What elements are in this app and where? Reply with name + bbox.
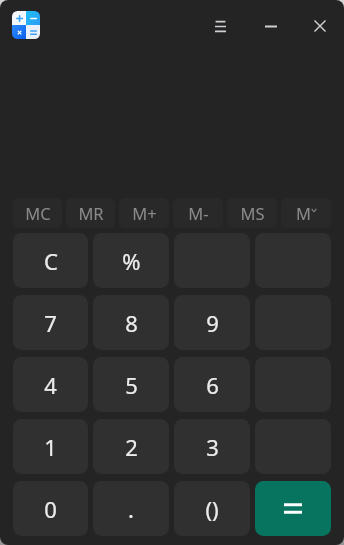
staticText: .: [128, 494, 134, 524]
staticText: MR: [78, 202, 104, 224]
button[interactable]: 8: [93, 295, 169, 350]
button[interactable]: More memory options: [281, 198, 331, 228]
button[interactable]: 0: [13, 481, 88, 536]
staticText: MC: [25, 202, 51, 224]
staticText: 8: [125, 308, 138, 338]
button[interactable]: Menu: [200, 2, 240, 50]
button[interactable]: 6: [174, 357, 250, 412]
staticText: M: [296, 202, 311, 224]
button[interactable]: MS: [227, 198, 277, 228]
button[interactable]: 1: [13, 419, 88, 474]
button[interactable]: 7: [13, 295, 88, 350]
staticText: (): [205, 494, 219, 524]
staticText: C: [44, 246, 58, 276]
staticText: 5: [125, 370, 138, 400]
button[interactable]: M+: [119, 198, 169, 228]
staticText: M-: [188, 202, 209, 224]
button[interactable]: Close: [300, 2, 340, 50]
button[interactable]: 4: [13, 357, 88, 412]
button[interactable]: .: [93, 481, 169, 536]
staticText: M+: [132, 202, 157, 224]
staticText: %: [122, 246, 141, 276]
button[interactable]: 2: [93, 419, 169, 474]
staticText: 2: [125, 432, 138, 462]
staticText: 4: [44, 370, 57, 400]
button[interactable]: %: [93, 233, 169, 288]
button[interactable]: M-: [173, 198, 223, 228]
button[interactable]: MR: [66, 198, 115, 228]
staticText: 7: [44, 308, 57, 338]
button[interactable]: C: [13, 233, 88, 288]
button[interactable]: MC: [13, 198, 62, 228]
staticText: 6: [206, 370, 219, 400]
staticText: MS: [240, 202, 265, 224]
button[interactable]: Equals: [255, 481, 331, 536]
staticText: 3: [206, 432, 219, 462]
button[interactable]: 5: [93, 357, 169, 412]
button[interactable]: Minimize: [251, 2, 291, 50]
staticText: 0: [44, 494, 57, 524]
button[interactable]: 3: [174, 419, 250, 474]
staticText: 1: [44, 432, 57, 462]
staticText: 9: [206, 308, 219, 338]
button[interactable]: 9: [174, 295, 250, 350]
button[interactable]: (): [174, 481, 250, 536]
